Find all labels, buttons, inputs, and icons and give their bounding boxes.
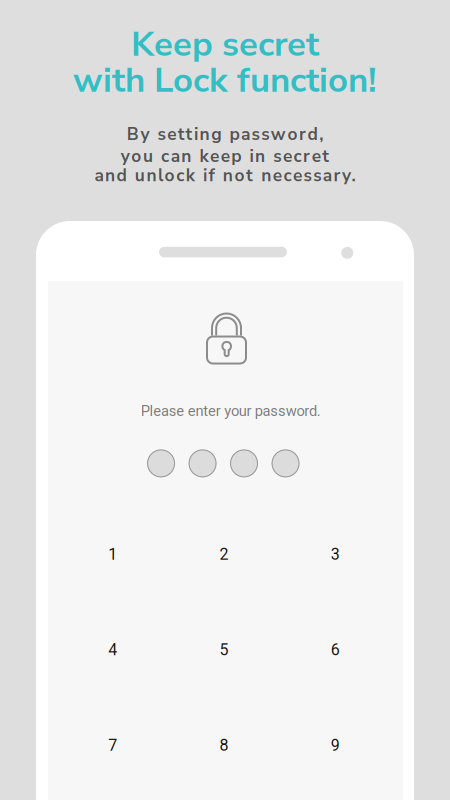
- button[interactable]: 3: [280, 507, 391, 602]
- staticText: 9: [331, 736, 340, 755]
- staticText: 2: [219, 545, 228, 564]
- staticText: with Lock function!: [73, 57, 377, 104]
- staticText: 3: [331, 545, 340, 564]
- staticText: 5: [219, 640, 228, 659]
- button[interactable]: 6: [280, 602, 391, 698]
- button[interactable]: 4: [57, 602, 168, 698]
- staticText: 7: [108, 736, 117, 755]
- staticText: Keep secret: [131, 21, 319, 68]
- staticText: 4: [108, 640, 117, 659]
- button[interactable]: 5: [168, 602, 280, 698]
- button[interactable]: 8: [168, 698, 280, 793]
- staticText: Please enter your password.: [141, 402, 321, 420]
- button[interactable]: 2: [168, 507, 280, 602]
- staticText: 1: [108, 545, 117, 564]
- staticText: 8: [219, 736, 228, 755]
- staticText: By setting password,: [127, 122, 323, 146]
- button[interactable]: 9: [280, 698, 391, 793]
- button[interactable]: 7: [57, 698, 168, 793]
- staticText: you can keep in secret: [121, 144, 329, 168]
- staticText: and unlock if not necessary.: [94, 164, 356, 187]
- staticText: 6: [331, 640, 340, 659]
- button[interactable]: 1: [57, 507, 168, 602]
